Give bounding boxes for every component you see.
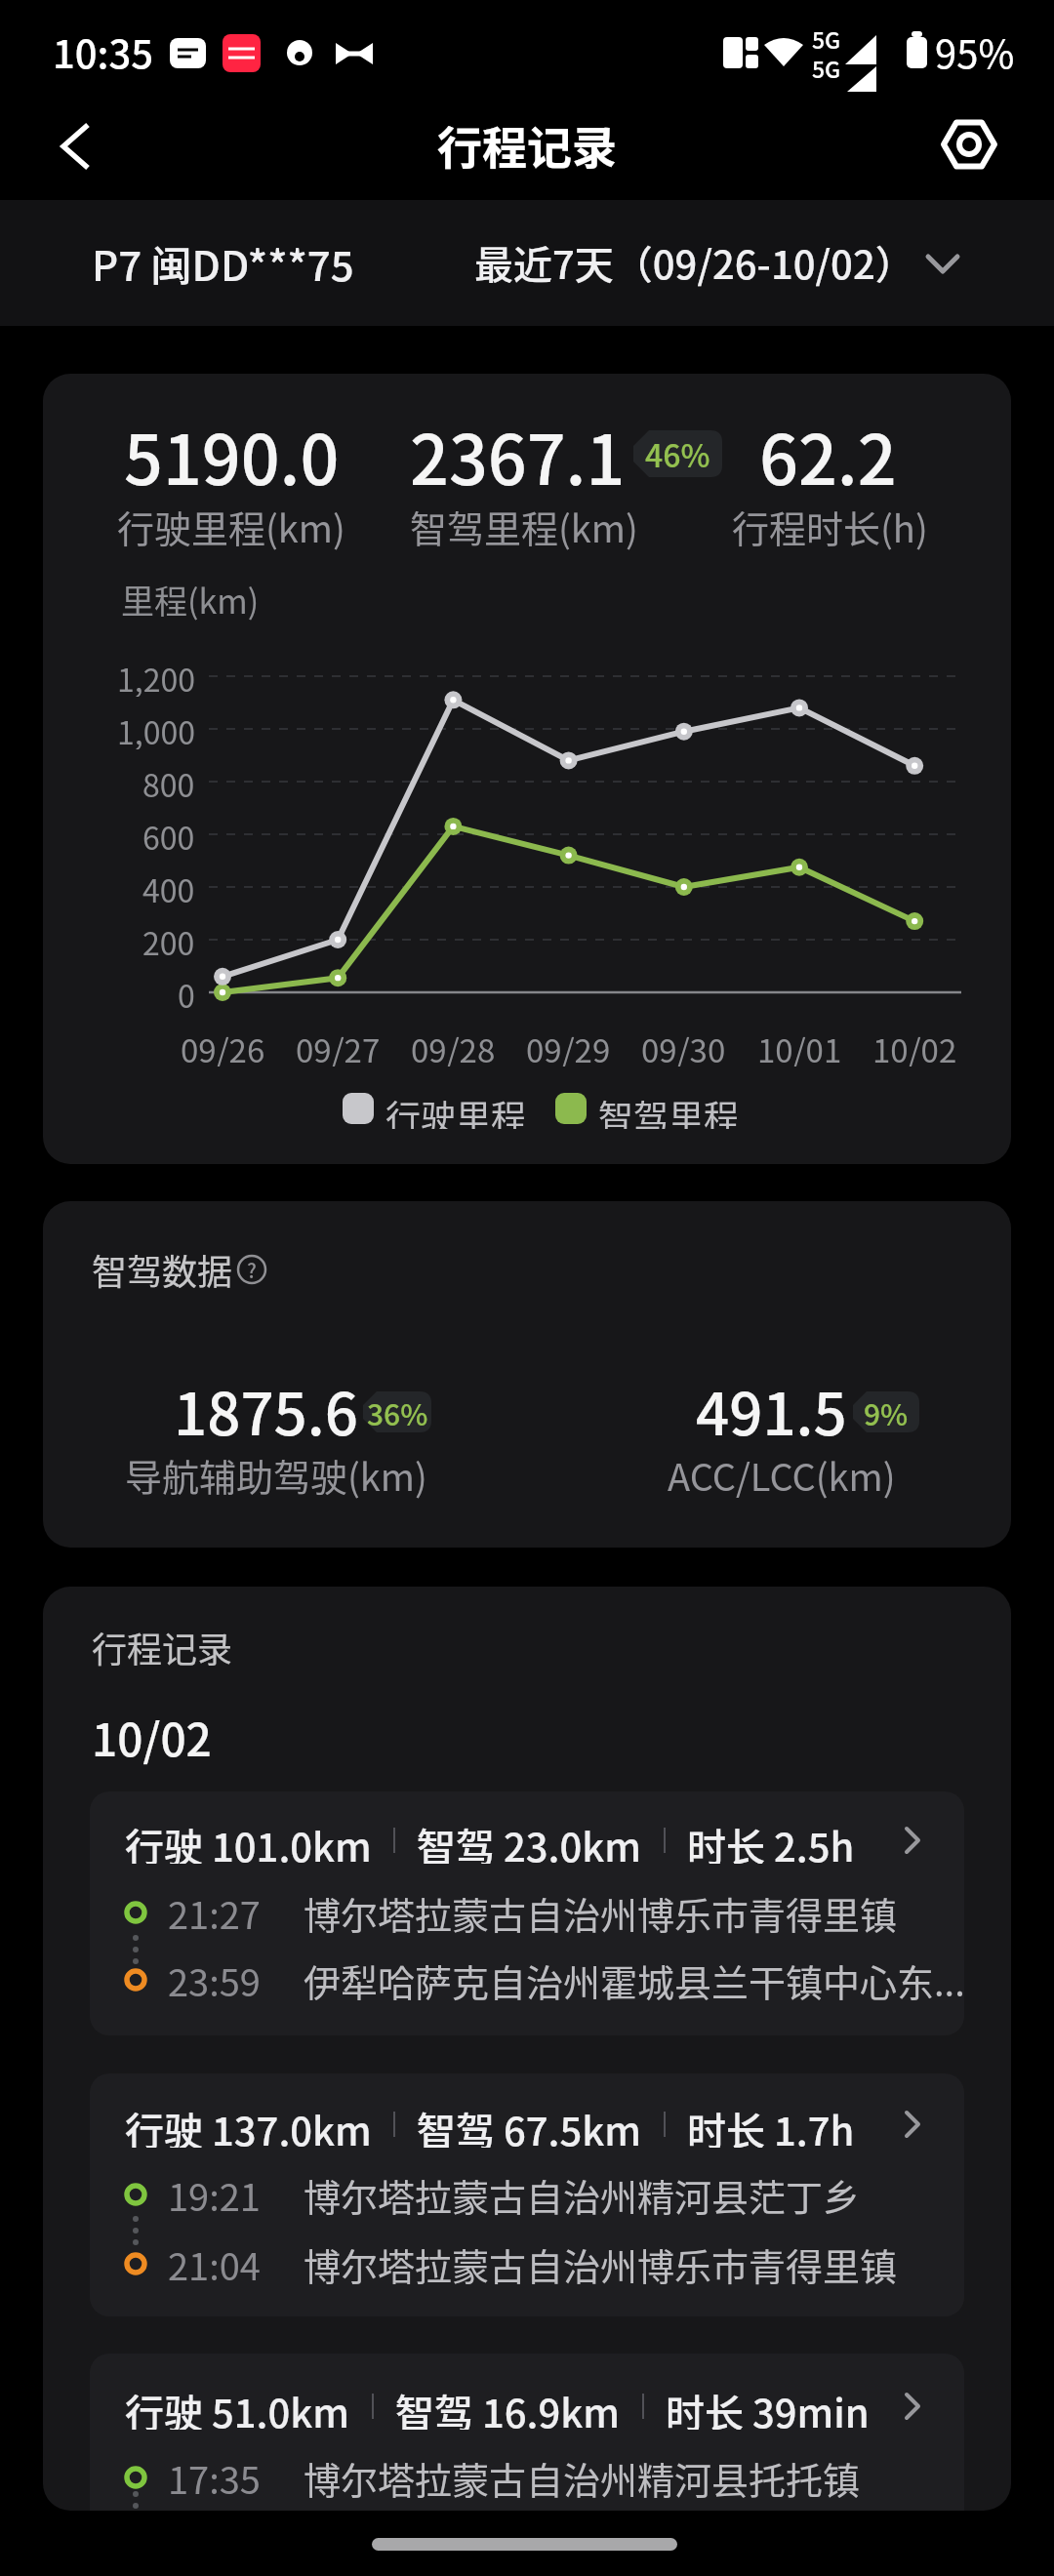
button[interactable] xyxy=(90,1791,964,2035)
staticText: 智驾里程(km) xyxy=(410,500,638,553)
staticText: 09/26 xyxy=(181,1026,265,1067)
staticText: 5190.0 xyxy=(124,406,340,504)
staticText: 1,200 xyxy=(117,656,195,697)
staticText: 智驾 67.5km xyxy=(417,2101,642,2148)
staticText: 10/01 xyxy=(757,1026,842,1067)
staticText: 博尔塔拉蒙古自治州精河县茫丁乡 xyxy=(304,2168,861,2222)
staticText: 491.5 xyxy=(696,1367,847,1452)
button[interactable] xyxy=(429,200,1054,326)
staticText: 09/29 xyxy=(526,1026,611,1067)
staticText: 5G xyxy=(812,52,841,84)
button[interactable] xyxy=(90,2354,964,2511)
staticText: 200 xyxy=(142,919,195,960)
staticText: 36% xyxy=(367,1391,428,1432)
staticText: 智驾数据 xyxy=(92,1244,233,1295)
staticText: 智驾 16.9km xyxy=(395,2383,621,2430)
staticText: 时长 39min xyxy=(666,2383,870,2430)
staticText: 最近7天（09/26-10/02） xyxy=(474,234,914,291)
staticText: 行程记录 xyxy=(92,1622,233,1672)
button[interactable] xyxy=(0,200,429,326)
staticText: 行驶 137.0km xyxy=(125,2101,372,2148)
staticText: 09/28 xyxy=(411,1026,496,1067)
staticText: 里程(km) xyxy=(121,576,260,623)
button[interactable] xyxy=(90,2073,964,2316)
staticText: 19:21 xyxy=(168,2168,261,2222)
staticText: 行程记录 xyxy=(437,112,617,178)
staticText: 博尔塔拉蒙古自治州精河县托托镇 xyxy=(304,2451,861,2505)
staticText: 46% xyxy=(645,431,710,476)
staticText: 600 xyxy=(142,814,195,855)
button[interactable] xyxy=(925,101,1013,188)
staticText: 行程时长(h) xyxy=(732,500,928,553)
staticText: 博尔塔拉蒙古自治州博乐市青得里镇 xyxy=(304,2237,898,2291)
staticText: 行驶 51.0km xyxy=(125,2383,350,2430)
staticText: 行驶 101.0km xyxy=(125,1817,372,1864)
staticText: 博尔塔拉蒙古自治州博乐市青得里镇 xyxy=(304,1886,898,1940)
staticText: 17:35 xyxy=(168,2451,261,2505)
staticText: P7 闽DD***75 xyxy=(92,233,354,293)
button[interactable] xyxy=(39,102,127,190)
staticText: 21:04 xyxy=(168,2237,261,2291)
staticText: 导航辅助驾驶(km) xyxy=(125,1448,427,1502)
staticText: 10/02 xyxy=(92,1705,212,1770)
staticText: 2367.1 xyxy=(410,406,626,504)
staticText: 行驶里程(km) xyxy=(117,500,345,553)
staticText: 1875.6 xyxy=(174,1367,358,1452)
staticText: 23:59 xyxy=(168,1953,261,2007)
staticText: 时长 2.5h xyxy=(687,1817,855,1864)
staticText: 时长 1.7h xyxy=(687,2101,855,2148)
staticText: ACC/LCC(km) xyxy=(668,1448,896,1502)
staticText: 5G xyxy=(812,22,841,55)
staticText: 1,000 xyxy=(117,708,195,749)
staticText: 智驾 23.0km xyxy=(417,1817,642,1864)
staticText: 21:27 xyxy=(168,1886,261,1940)
staticText: 10/02 xyxy=(872,1026,957,1067)
staticText: 400 xyxy=(142,866,195,907)
staticText: 62.2 xyxy=(759,406,897,504)
staticText: 9% xyxy=(864,1391,909,1432)
staticText: 800 xyxy=(142,761,195,802)
staticText: 智驾里程 xyxy=(598,1090,740,1129)
staticText: 10:35 xyxy=(53,23,154,80)
staticText: 95% xyxy=(935,23,1015,80)
staticText: 0 xyxy=(178,972,195,1013)
staticText: 伊犁哈萨克自治州霍城县兰干镇中心东... xyxy=(304,1953,965,2007)
staticText: ? xyxy=(247,1256,257,1284)
staticText: 09/27 xyxy=(296,1026,381,1067)
staticText: 行驶里程 xyxy=(385,1090,527,1129)
staticText: 09/30 xyxy=(641,1026,726,1067)
